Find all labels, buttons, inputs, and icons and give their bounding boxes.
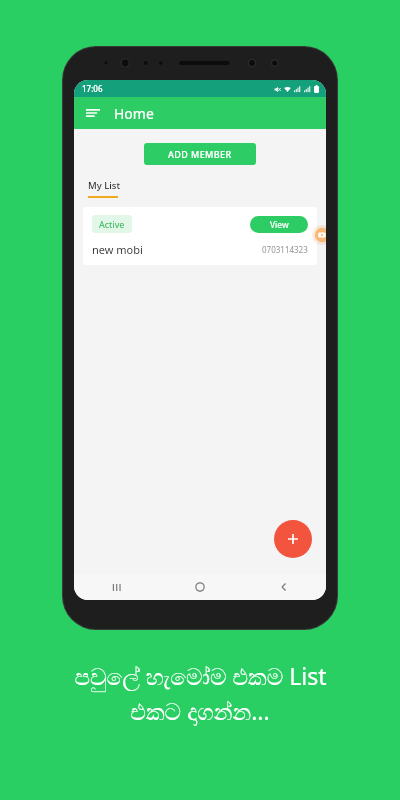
staticText: 17:06: [82, 83, 103, 94]
staticText: My List: [88, 179, 121, 192]
button[interactable]: Open navigation menu: [82, 102, 104, 124]
staticText: Active: [99, 218, 125, 230]
button[interactable]: Recent apps: [74, 574, 158, 600]
staticText: ADD MEMBER: [168, 148, 232, 160]
button[interactable]: ADD MEMBER: [144, 143, 256, 165]
button[interactable]: View: [250, 216, 308, 233]
staticText: එකට දාගන්න...: [130, 695, 270, 726]
staticText: new mobi: [92, 242, 143, 257]
staticText: 0703114323: [262, 244, 308, 255]
button[interactable]: My List: [88, 179, 127, 198]
button[interactable]: Active: [83, 207, 317, 265]
staticText: පවුලේ හැමෝම එකම List: [74, 660, 327, 691]
staticText: View: [270, 219, 289, 231]
button[interactable]: Add: [274, 520, 312, 558]
button[interactable]: Home: [158, 574, 242, 600]
button[interactable]: Back: [242, 574, 326, 600]
staticText: Home: [114, 104, 154, 123]
